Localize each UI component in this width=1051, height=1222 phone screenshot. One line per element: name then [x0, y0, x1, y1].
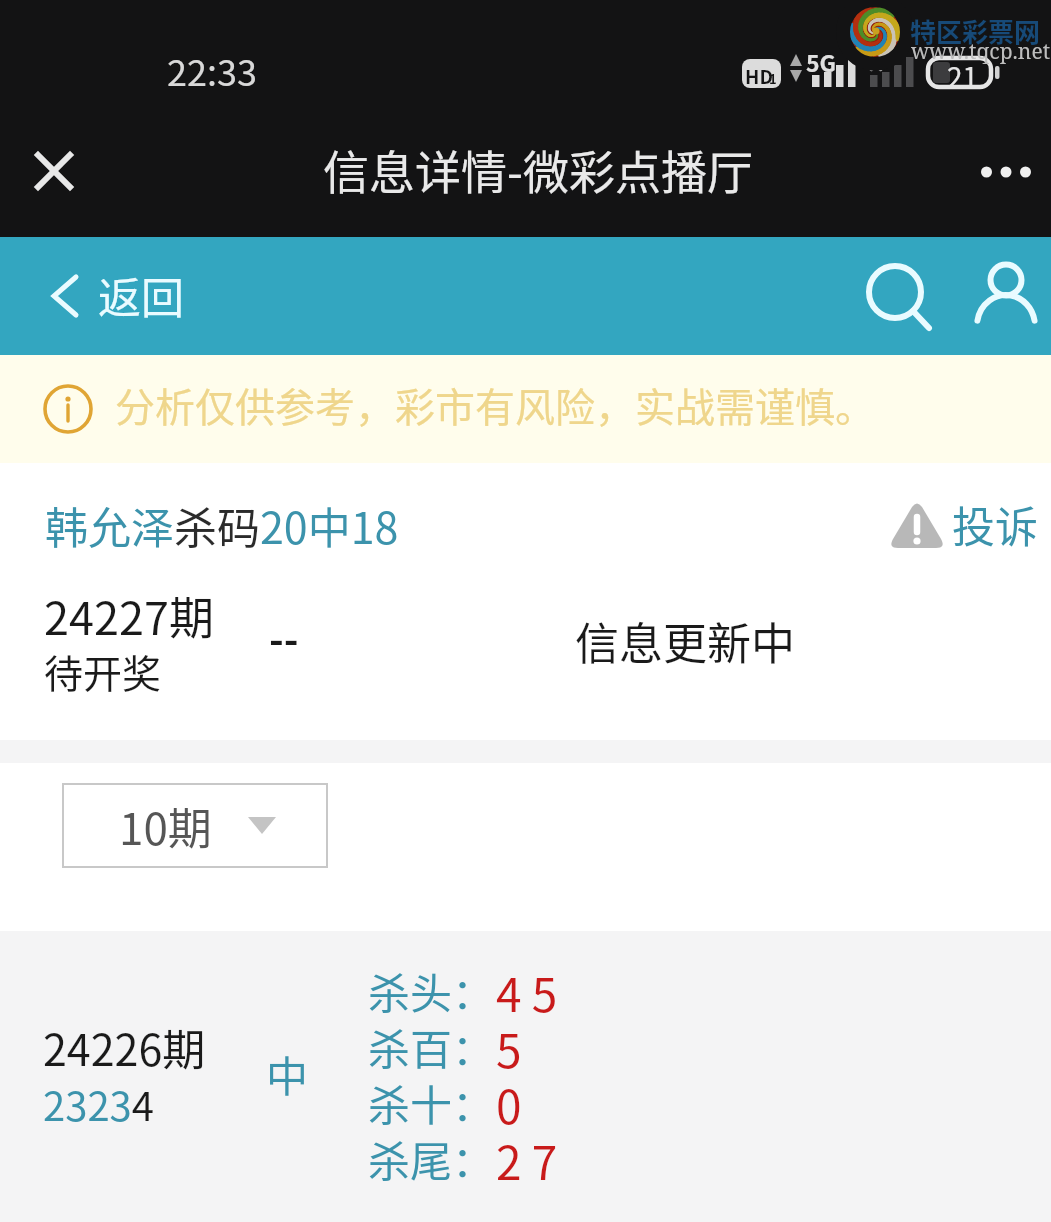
button[interactable]: 24226期: [0, 931, 1051, 1222]
staticText: 中: [266, 1043, 309, 1104]
staticText: 24227期: [44, 583, 214, 648]
staticText: 23234: [43, 1075, 154, 1133]
button[interactable]: 10期: [62, 783, 328, 868]
staticText: HD: [745, 62, 773, 88]
staticText: 4 5: [496, 959, 558, 1015]
staticText: 0: [496, 1071, 522, 1127]
staticText: 待开奖: [44, 643, 162, 699]
staticText: 杀头：: [368, 960, 495, 1016]
button[interactable]: Search: [851, 247, 941, 345]
button[interactable]: 投诉: [888, 493, 1038, 555]
staticText: 5: [496, 1015, 522, 1071]
button[interactable]: Close: [18, 134, 90, 208]
staticText: 信息详情-微彩点播厅: [323, 136, 753, 203]
button[interactable]: 返回: [28, 255, 184, 337]
staticText: 1: [769, 69, 777, 88]
button[interactable]: Profile: [962, 247, 1051, 345]
staticText: 10期: [119, 794, 212, 858]
staticText: 分析仅供参考，彩市有风险，实战需谨慎。: [115, 376, 875, 434]
staticText: 杀十：: [368, 1072, 495, 1128]
staticText: 22:33: [167, 44, 257, 96]
staticText: 韩允泽杀码20中18: [45, 494, 399, 556]
staticText: 返回: [98, 264, 184, 326]
staticText: 24226期: [43, 1016, 206, 1078]
staticText: 杀尾：: [368, 1128, 495, 1184]
button[interactable]: More options: [963, 132, 1049, 212]
staticText: 5G: [806, 45, 837, 78]
staticText: 杀百：: [368, 1016, 495, 1072]
staticText: 投诉: [952, 493, 1038, 555]
staticText: --: [269, 608, 299, 666]
staticText: www.tqcp.net: [911, 37, 1051, 66]
staticText: 2 7: [496, 1127, 558, 1183]
staticText: 21: [947, 56, 979, 97]
staticText: 信息更新中: [575, 609, 795, 673]
staticText: 特区彩票网: [910, 12, 1041, 50]
